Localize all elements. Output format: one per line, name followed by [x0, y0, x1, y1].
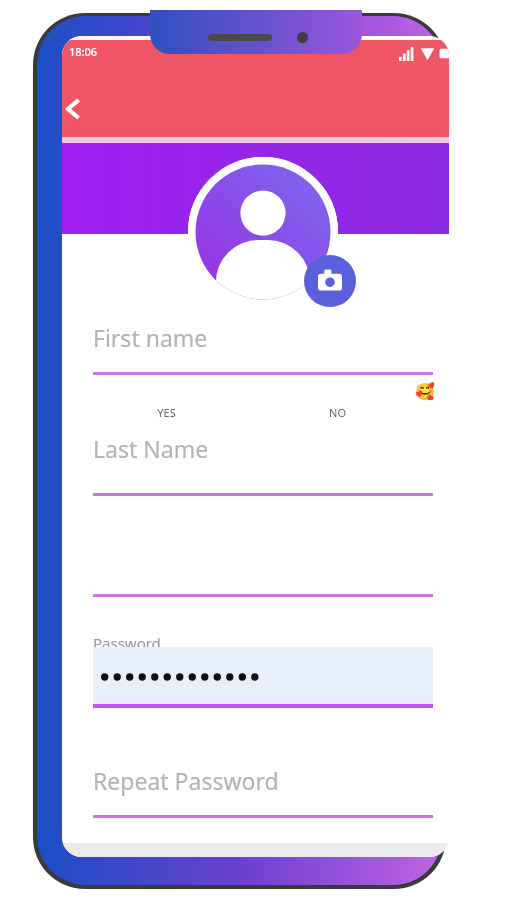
button[interactable]	[93, 316, 433, 380]
staticText: YES	[157, 405, 176, 420]
staticText: Repeat Password	[93, 765, 279, 796]
button[interactable]	[93, 548, 433, 597]
staticText: NO	[329, 405, 346, 420]
button[interactable]	[93, 427, 433, 501]
button[interactable]: NO	[299, 399, 375, 425]
button[interactable]: Back	[62, 86, 96, 132]
staticText: 18:06	[69, 44, 98, 59]
button[interactable]: Change photo	[304, 255, 356, 307]
button[interactable]: YES	[128, 399, 204, 425]
staticText: Last Name	[93, 433, 209, 464]
button[interactable]	[93, 647, 433, 705]
staticText: First name	[93, 322, 208, 353]
button[interactable]	[93, 759, 433, 823]
staticText: 🥰	[415, 382, 435, 401]
staticText: Password	[93, 633, 161, 653]
button[interactable]: Profile photo	[188, 157, 338, 307]
